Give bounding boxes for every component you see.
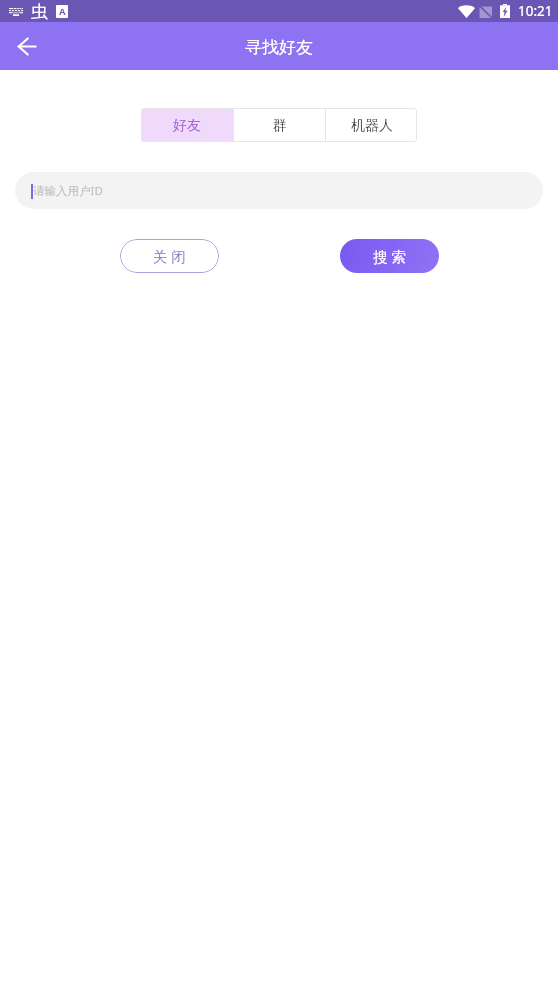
staticText: A (59, 5, 66, 18)
button[interactable]: 请输入用户ID (15, 172, 543, 209)
staticText: 虫 (31, 1, 48, 22)
staticText: 好友 (173, 117, 201, 135)
button[interactable]: 群 (234, 108, 325, 142)
staticText: 10:21 (518, 2, 553, 20)
staticText: 关 闭 (153, 246, 186, 266)
staticText: 寻找好友 (245, 37, 313, 58)
staticText: 机器人 (351, 117, 393, 135)
button[interactable]: 机器人 (326, 108, 417, 142)
button[interactable]: 关 闭 (120, 239, 219, 273)
button[interactable]: 搜 索 (340, 239, 439, 273)
staticText: 搜 索 (373, 246, 406, 266)
staticText: 群 (273, 117, 287, 135)
staticText: 请输入用户ID (33, 183, 103, 199)
button[interactable]: Back (0, 22, 52, 70)
button[interactable]: 好友 (141, 108, 233, 142)
